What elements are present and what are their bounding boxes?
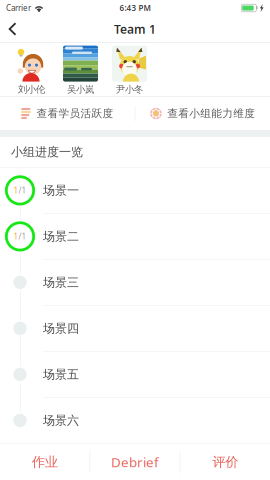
button[interactable]: 1 bbox=[0, 214, 270, 259]
button[interactable]: Back bbox=[0, 16, 27, 42]
staticText: 小组进度一览 bbox=[11, 145, 83, 159]
button[interactable]: 1 bbox=[0, 168, 270, 213]
button[interactable]: 吴小岚 bbox=[56, 43, 105, 96]
button[interactable]: 场景四 bbox=[0, 306, 270, 351]
staticText: Carrier bbox=[6, 3, 31, 13]
staticText: 吴小岚 bbox=[67, 84, 94, 95]
staticText: 1 bbox=[13, 231, 18, 242]
button[interactable]: 作业 bbox=[0, 444, 89, 480]
button[interactable]: Debrief bbox=[90, 444, 180, 480]
staticText: 作业 bbox=[32, 454, 58, 470]
button[interactable]: 场景五 bbox=[0, 352, 270, 397]
button[interactable]: 评价 bbox=[180, 444, 270, 480]
staticText: 6:43 PM bbox=[119, 3, 150, 13]
staticText: 场景二 bbox=[43, 229, 79, 244]
staticText: /1 bbox=[18, 185, 26, 196]
staticText: 查看小组能力维度 bbox=[167, 107, 255, 120]
staticText: 场景一 bbox=[43, 183, 79, 198]
staticText: 场景五 bbox=[43, 367, 79, 382]
button[interactable]: 查看学员活跃度 bbox=[0, 97, 135, 130]
staticText: 查看学员活跃度 bbox=[36, 107, 113, 120]
staticText: Team 1 bbox=[114, 21, 156, 37]
staticText: 刘小伦 bbox=[18, 84, 45, 95]
staticText: 场景四 bbox=[43, 321, 79, 336]
staticText: 场景六 bbox=[43, 413, 79, 428]
button[interactable]: 场景三 bbox=[0, 260, 270, 305]
button[interactable]: 刘小伦 bbox=[7, 43, 56, 96]
staticText: 尹小冬 bbox=[116, 84, 143, 95]
button[interactable]: 场景六 bbox=[0, 398, 270, 443]
button[interactable]: 尹小冬 bbox=[105, 43, 154, 96]
staticText: 场景三 bbox=[43, 275, 79, 290]
staticText: 1 bbox=[13, 185, 18, 196]
staticText: 评价 bbox=[212, 454, 238, 470]
staticText: Debrief bbox=[111, 453, 159, 471]
staticText: /1 bbox=[18, 231, 26, 242]
button[interactable]: 查看小组能力维度 bbox=[135, 97, 270, 130]
